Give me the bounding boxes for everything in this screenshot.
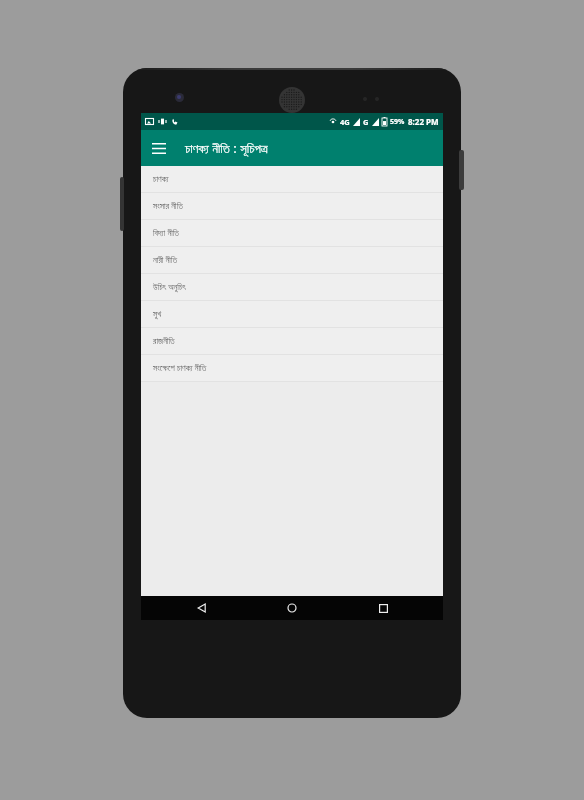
button[interactable]: বিদ্যা নীতি (141, 220, 443, 246)
button[interactable]: সংসার নীতি (141, 193, 443, 219)
staticText: সংক্ষেপে চাণক্য নীতি (153, 362, 207, 374)
staticText: G (363, 117, 369, 127)
staticText: চাণক্য নীতি : সূচিপত্র (185, 139, 268, 157)
button[interactable]: Home (262, 596, 322, 620)
button[interactable]: সংক্ষেপে চাণক্য নীতি (141, 355, 443, 381)
staticText: সংসার নীতি (153, 200, 183, 212)
button[interactable]: সুখ (141, 301, 443, 327)
button[interactable]: Back (172, 596, 232, 620)
button[interactable]: উচিৎ অনুচিৎ (141, 274, 443, 300)
staticText: 8:22 PM (408, 116, 439, 127)
staticText: রাজনীতি (153, 337, 175, 346)
staticText: সুখ (153, 310, 162, 319)
button[interactable]: Recent apps (353, 596, 413, 620)
button[interactable]: চাণক্য (141, 166, 443, 192)
staticText: নারী নীতি (153, 254, 178, 266)
staticText: বিদ্যা নীতি (153, 227, 179, 239)
button[interactable]: নারী নীতি (141, 247, 443, 273)
button[interactable]: Open navigation menu (141, 130, 177, 166)
staticText: 4G (340, 117, 350, 127)
staticText: 59% (390, 117, 405, 127)
staticText: চাণক্য (153, 175, 169, 184)
staticText: উচিৎ অনুচিৎ (153, 281, 186, 293)
button[interactable]: রাজনীতি (141, 328, 443, 354)
